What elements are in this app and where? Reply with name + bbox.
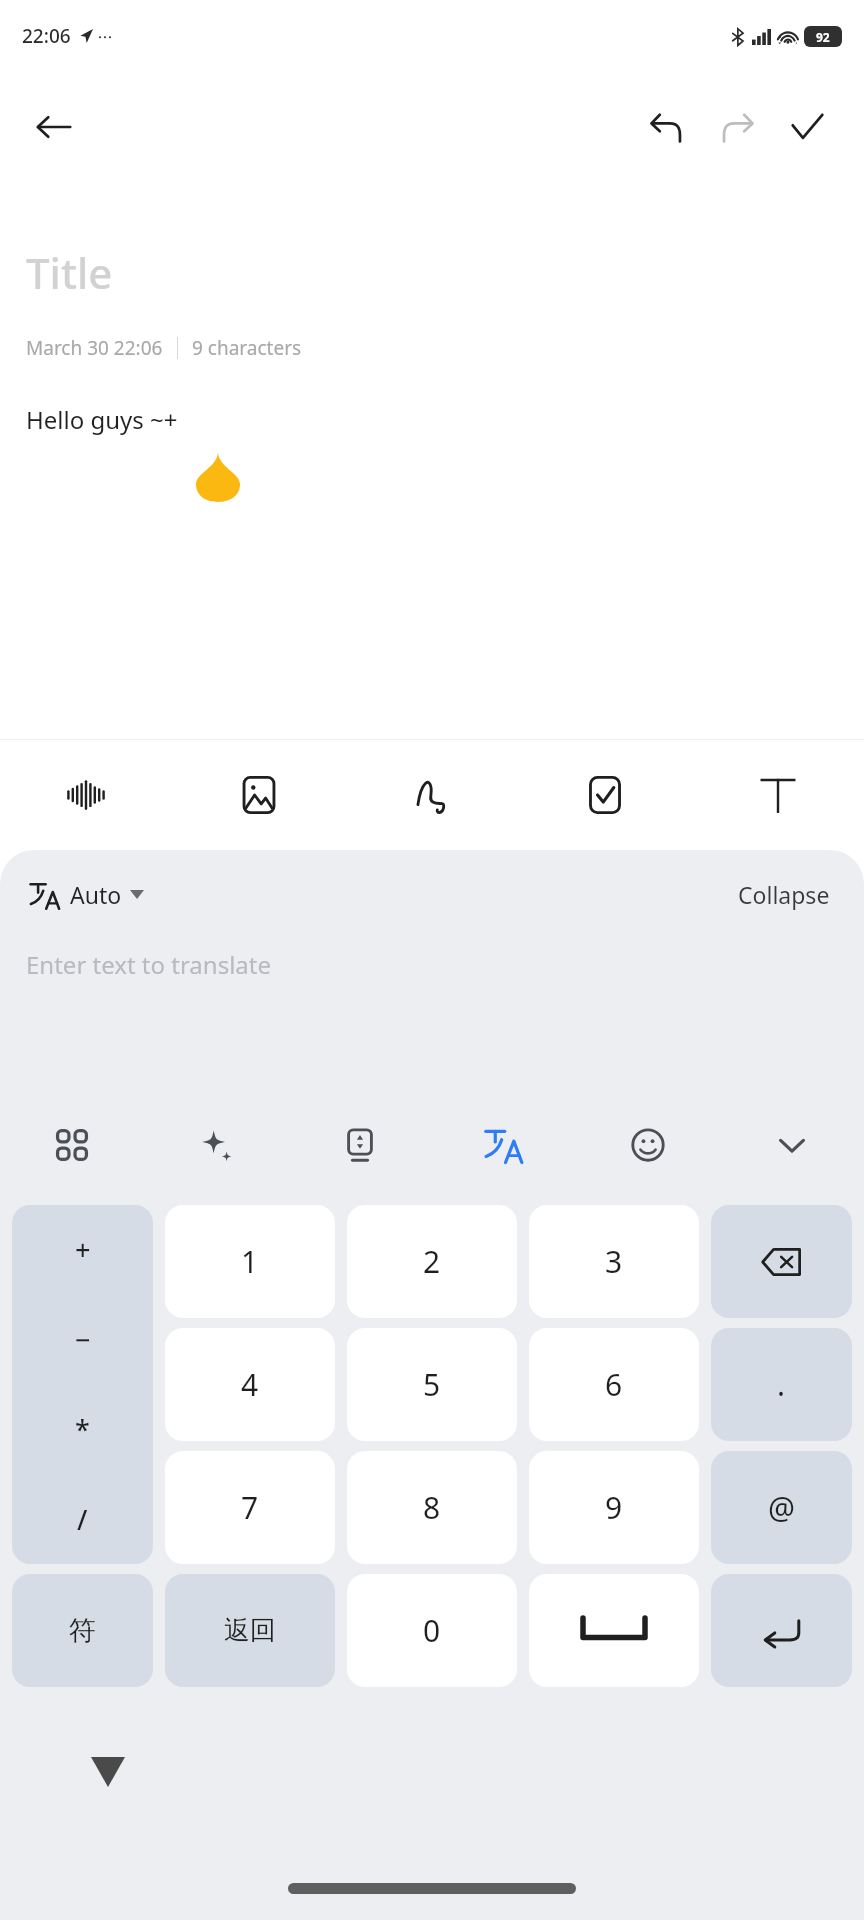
staticText: Enter text to translate bbox=[26, 948, 272, 981]
button[interactable]: Translate bbox=[432, 1090, 576, 1200]
button[interactable]: 4 bbox=[165, 1328, 335, 1441]
button[interactable]: 5 bbox=[347, 1328, 517, 1441]
button[interactable]: 符 bbox=[12, 1574, 153, 1687]
staticText: . bbox=[777, 1364, 786, 1405]
button[interactable]: Voice bbox=[0, 740, 172, 850]
button[interactable]: Keyboard menu bbox=[0, 1090, 144, 1200]
staticText: @ bbox=[768, 1487, 795, 1528]
staticText: 9 bbox=[605, 1487, 623, 1528]
button[interactable]: Resize keyboard bbox=[288, 1090, 432, 1200]
button[interactable]: 2 bbox=[347, 1205, 517, 1318]
button[interactable]: . bbox=[711, 1328, 852, 1441]
staticText: 3 bbox=[605, 1241, 623, 1282]
button[interactable]: + bbox=[12, 1205, 153, 1564]
button[interactable]: Enter bbox=[711, 1574, 852, 1687]
staticText: Collapse bbox=[738, 879, 830, 910]
staticText: 符 bbox=[69, 1614, 96, 1648]
button[interactable]: Done bbox=[772, 92, 842, 162]
staticText: Hello guys ~+ bbox=[26, 403, 178, 436]
button[interactable]: 8 bbox=[347, 1451, 517, 1564]
button[interactable]: Collapse bbox=[730, 871, 838, 918]
staticText: 22:06 bbox=[22, 23, 71, 49]
button[interactable]: Backspace bbox=[711, 1205, 852, 1318]
staticText: 0 bbox=[423, 1610, 441, 1651]
button[interactable]: Checklist bbox=[518, 740, 691, 850]
button[interactable]: @ bbox=[711, 1451, 852, 1564]
staticText: 7 bbox=[241, 1487, 259, 1528]
button[interactable]: Image bbox=[172, 740, 345, 850]
staticText: 2 bbox=[423, 1241, 441, 1282]
button[interactable]: 7 bbox=[165, 1451, 335, 1564]
staticText: * bbox=[75, 1411, 90, 1448]
staticText: 9 characters bbox=[192, 335, 302, 361]
button[interactable]: Redo bbox=[702, 92, 772, 162]
staticText: 5 bbox=[423, 1364, 441, 1405]
button[interactable]: 3 bbox=[529, 1205, 699, 1318]
button[interactable]: Emoji bbox=[576, 1090, 720, 1200]
button[interactable]: 1 bbox=[165, 1205, 335, 1318]
staticText: Title bbox=[26, 244, 113, 301]
staticText: Auto bbox=[70, 879, 122, 910]
button[interactable]: Hide keyboard bbox=[720, 1090, 864, 1200]
button[interactable]: Hide keyboard bbox=[78, 1742, 138, 1802]
button[interactable]: 6 bbox=[529, 1328, 699, 1441]
staticText: 6 bbox=[605, 1364, 623, 1405]
button[interactable]: AI assist bbox=[144, 1090, 288, 1200]
staticText: + bbox=[75, 1231, 91, 1268]
button[interactable]: Space bbox=[529, 1574, 699, 1687]
staticText: 返回 bbox=[224, 1614, 276, 1647]
staticText: 92 bbox=[816, 29, 830, 45]
button[interactable]: Undo bbox=[632, 92, 702, 162]
staticText: 4 bbox=[241, 1364, 259, 1405]
staticText: / bbox=[77, 1501, 88, 1538]
button[interactable]: 返回 bbox=[165, 1574, 335, 1687]
button[interactable]: 9 bbox=[529, 1451, 699, 1564]
staticText: 1 bbox=[241, 1241, 259, 1282]
button[interactable]: Back bbox=[26, 99, 82, 155]
staticText: − bbox=[75, 1321, 91, 1358]
staticText: 8 bbox=[423, 1487, 441, 1528]
button[interactable]: Draw bbox=[345, 740, 518, 850]
button[interactable]: 0 bbox=[347, 1574, 517, 1687]
button[interactable]: Auto bbox=[26, 871, 148, 918]
button[interactable]: Text style bbox=[691, 740, 864, 850]
staticText: March 30 22:06 bbox=[26, 335, 163, 361]
